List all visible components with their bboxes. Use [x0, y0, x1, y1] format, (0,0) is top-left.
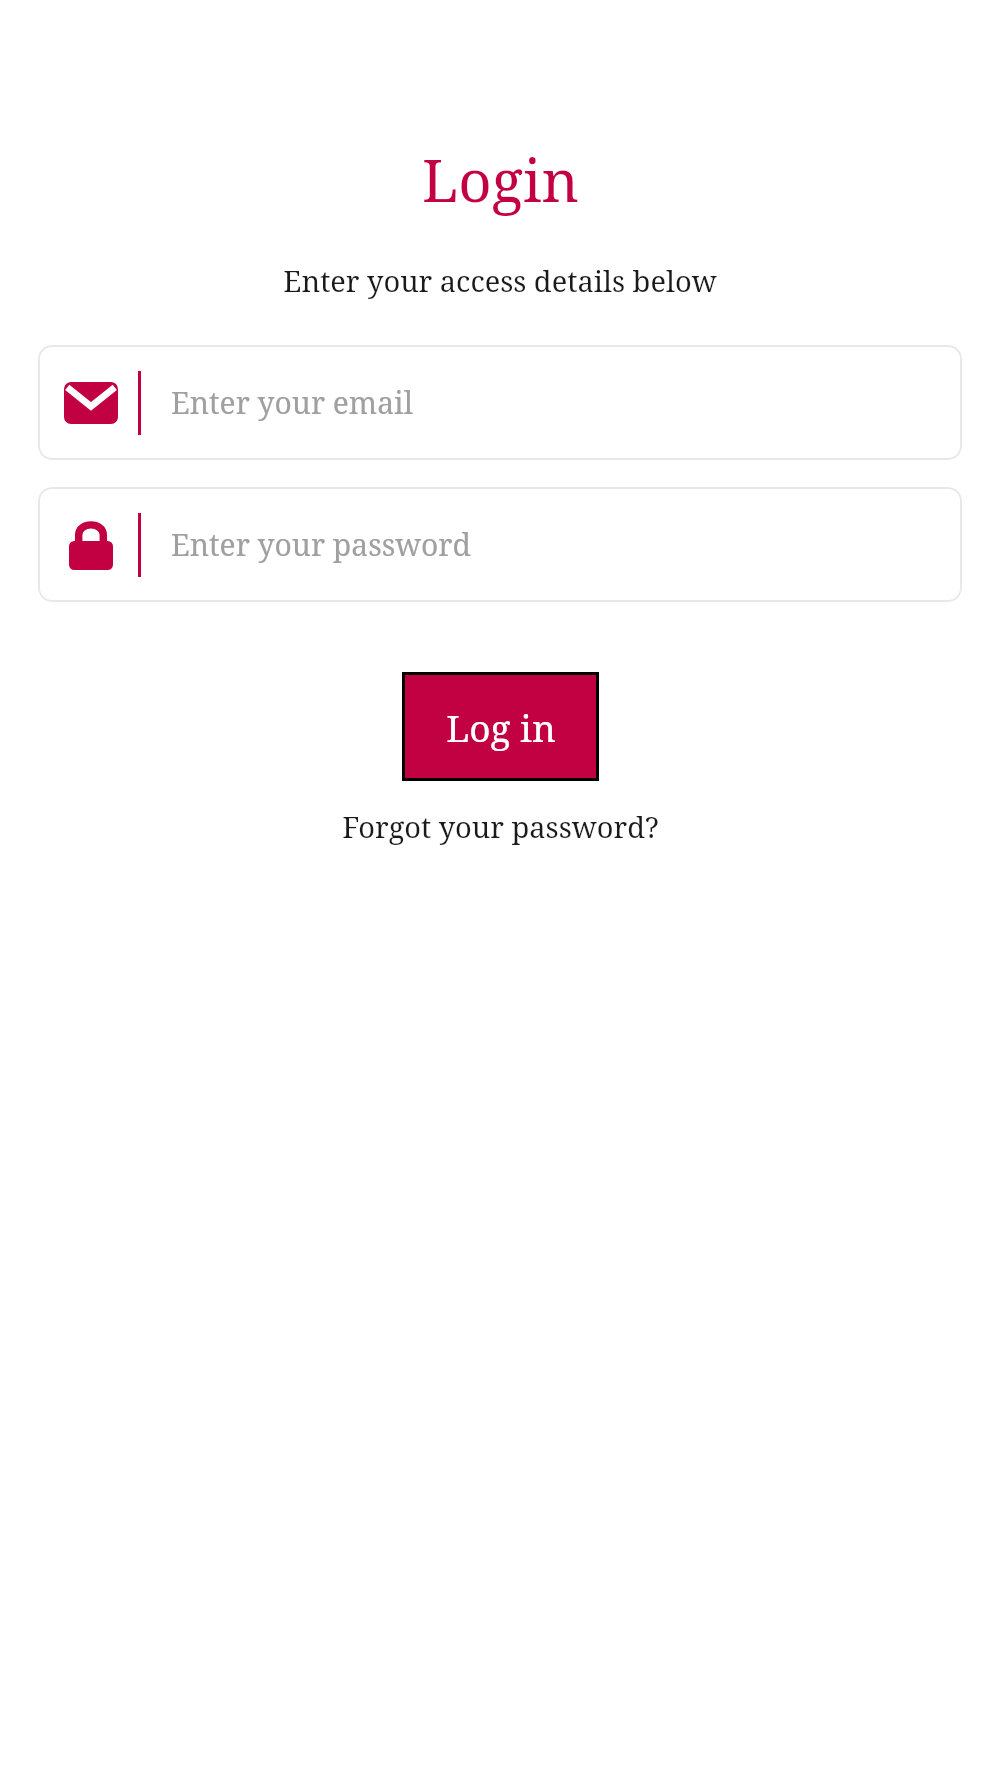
- button[interactable]: Log in: [402, 672, 599, 781]
- other: Password: [64, 518, 118, 572]
- staticText: Enter your password: [171, 524, 471, 565]
- staticText: Enter your email: [171, 382, 414, 423]
- staticText: Login: [422, 140, 579, 219]
- button[interactable]: Password: [38, 487, 962, 602]
- staticText: Enter your access details below: [283, 261, 717, 300]
- staticText: Log in: [446, 702, 556, 752]
- button[interactable]: Email: [38, 345, 962, 460]
- staticText: Forgot your password?: [342, 807, 659, 846]
- button[interactable]: Forgot your password?: [332, 801, 669, 852]
- other: Email: [64, 376, 118, 430]
